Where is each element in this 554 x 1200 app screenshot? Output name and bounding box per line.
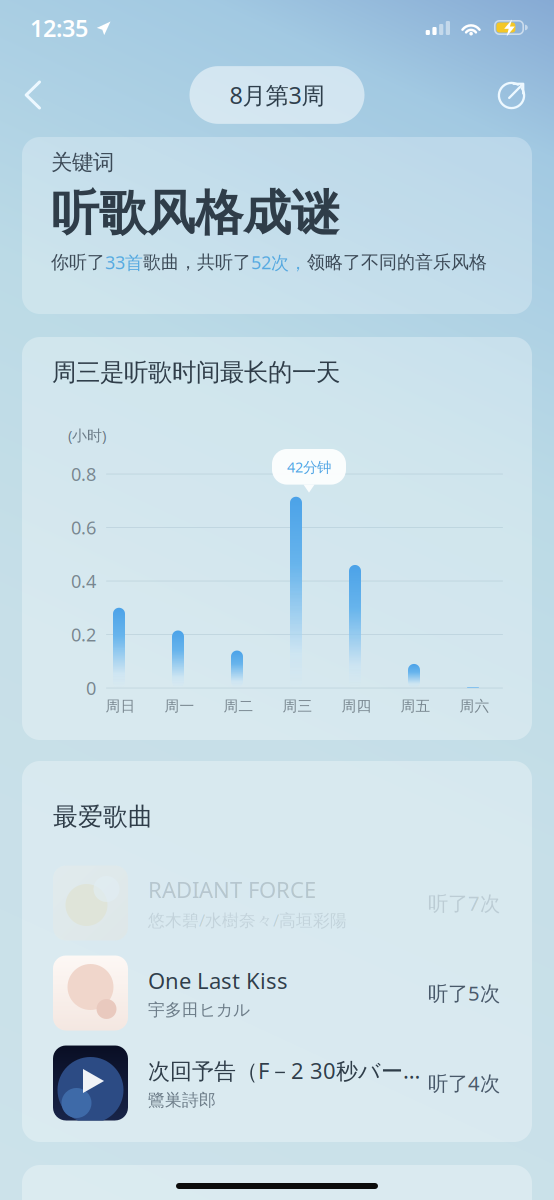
staticText: 42分钟 xyxy=(287,457,331,477)
staticText: 周二 xyxy=(223,697,253,715)
button[interactable]: 8月第3周 xyxy=(189,66,364,124)
staticText: 0.8 xyxy=(71,462,96,486)
staticText: 最爱歌曲 xyxy=(53,801,153,832)
button[interactable]: One Last Kiss xyxy=(22,948,532,1038)
staticText: 悠木碧/水樹奈々/高垣彩陽 xyxy=(148,908,347,931)
staticText: 周三 xyxy=(282,697,312,715)
button[interactable]: 次回予告（F－2 30秒バー... xyxy=(22,1038,532,1128)
staticText: 0.4 xyxy=(71,569,96,593)
staticText: 宇多田ヒカル xyxy=(148,999,250,1021)
staticText: 0.2 xyxy=(71,622,96,647)
staticText: 你听了 xyxy=(51,251,105,274)
staticText: 周日 xyxy=(105,697,135,715)
staticText: 周三是听歌时间最长的一天 xyxy=(52,357,340,388)
staticText: 听歌风格成谜 xyxy=(51,183,339,243)
staticText: 次回予告（F－2 30秒バー... xyxy=(148,1055,420,1086)
button[interactable]: Back xyxy=(10,66,56,124)
staticText: 鷺巣詩郎 xyxy=(148,1090,216,1111)
staticText: 歌曲，共听了 xyxy=(143,251,251,274)
staticText: 听了5次 xyxy=(428,979,500,1007)
staticText: RADIANT FORCE xyxy=(148,875,316,905)
staticText: 关键词 xyxy=(51,149,114,176)
button[interactable]: RADIANT FORCE xyxy=(22,858,532,948)
staticText: 听了7次 xyxy=(428,889,500,917)
staticText: 周四 xyxy=(341,697,371,715)
staticText: (小时) xyxy=(68,425,106,445)
staticText: 领略了不同的音乐风格 xyxy=(307,251,487,274)
staticText: 0.6 xyxy=(71,515,96,540)
staticText: 33首 xyxy=(105,250,143,274)
staticText: 周一 xyxy=(164,697,194,715)
staticText: 周六 xyxy=(459,697,489,715)
staticText: 8月第3周 xyxy=(229,79,324,111)
staticText: 52次， xyxy=(251,250,307,274)
staticText: 0 xyxy=(86,676,96,700)
staticText: 周五 xyxy=(400,697,430,715)
staticText: 12:35 xyxy=(30,12,88,44)
staticText: One Last Kiss xyxy=(148,965,288,995)
staticText: 听了4次 xyxy=(428,1069,500,1097)
button[interactable]: Share xyxy=(485,66,540,123)
